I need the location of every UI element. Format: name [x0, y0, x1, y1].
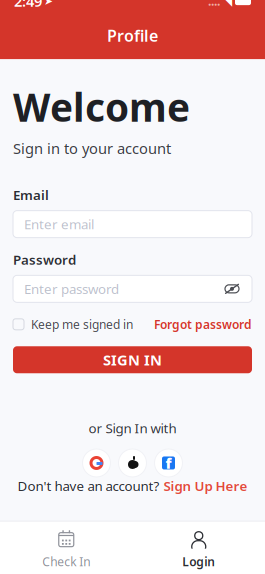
button[interactable]: Keep me signed in — [13, 316, 133, 332]
staticText: Email — [13, 186, 49, 204]
button[interactable]: Sign in with Facebook — [154, 449, 182, 477]
button[interactable]: Sign Up Here — [163, 477, 247, 495]
button[interactable]: SIGN IN — [13, 346, 252, 373]
staticText: Welcome — [13, 81, 190, 132]
staticText: Don't have an account? — [17, 477, 159, 495]
staticText: Forgot password — [154, 316, 252, 332]
button[interactable]: Sign in with Google — [82, 449, 110, 477]
staticText: or Sign In with — [88, 419, 176, 437]
staticText: Check In — [42, 554, 90, 570]
staticText: Password — [13, 251, 76, 268]
staticText: Profile — [107, 25, 158, 46]
staticText: Sign in to your account — [13, 138, 171, 158]
staticText: Enter email — [24, 215, 94, 233]
staticText: ➤ — [44, 0, 53, 7]
staticText: Enter password — [24, 280, 119, 298]
button[interactable]: Forgot password — [154, 316, 252, 332]
button[interactable]: Enter email — [13, 211, 252, 238]
staticText: SIGN IN — [103, 350, 162, 369]
staticText: Sign Up Here — [163, 477, 247, 495]
staticText: ◥ — [223, 0, 232, 8]
staticText: 2:49 — [14, 0, 42, 11]
button[interactable]: Check In — [0, 531, 132, 570]
button[interactable]: Login — [132, 531, 265, 570]
staticText: Login — [182, 554, 215, 570]
staticText: Keep me signed in — [31, 316, 133, 332]
staticText: .... — [208, 0, 220, 9]
staticText: f — [165, 453, 171, 473]
button[interactable]: Enter password — [13, 275, 252, 302]
button[interactable]: Sign in with Apple — [118, 449, 146, 477]
